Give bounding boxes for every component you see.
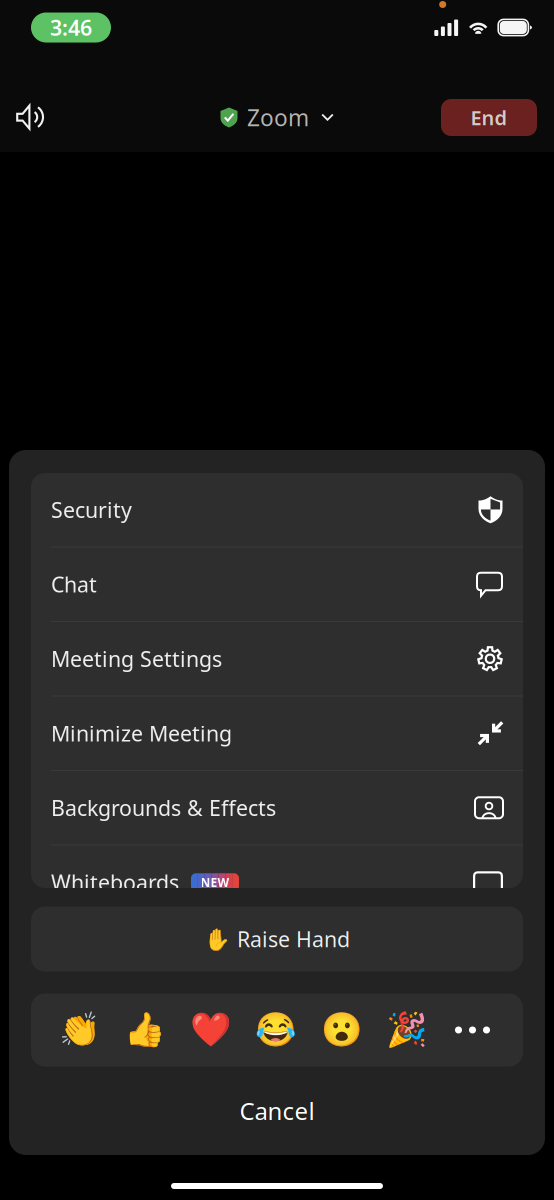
staticText: ✋ Raise Hand — [204, 925, 350, 953]
button[interactable]: Laugh — [243, 993, 309, 1066]
button[interactable]: Clap — [47, 993, 112, 1066]
button[interactable]: More reactions — [440, 993, 505, 1066]
button[interactable]: Wow — [309, 993, 374, 1066]
staticText: Minimize Meeting — [51, 719, 232, 747]
staticText: 😂 — [255, 1011, 297, 1049]
staticText: 🎉 — [386, 1011, 428, 1049]
button[interactable]: Meeting Settings — [31, 622, 523, 695]
staticText: 3:46 — [50, 13, 92, 42]
button[interactable]: Celebrate — [374, 993, 440, 1066]
button[interactable]: Minimize Meeting — [31, 696, 523, 770]
staticText: 👍 — [124, 1011, 166, 1049]
staticText: Backgrounds & Effects — [51, 794, 276, 822]
staticText: ❤️ — [189, 1011, 231, 1049]
button[interactable]: Backgrounds & Effects — [31, 771, 523, 844]
staticText: 😮 — [320, 1011, 362, 1049]
staticText: 👏 — [58, 1011, 100, 1049]
staticText: NEW — [200, 874, 229, 890]
staticText: Cancel — [239, 1095, 314, 1127]
staticText: Meeting Settings — [51, 645, 222, 673]
staticText: Chat — [51, 570, 97, 598]
button[interactable]: Thumbs up — [112, 993, 178, 1066]
staticText: Zoom — [247, 102, 309, 132]
staticText: Security — [51, 496, 132, 524]
button[interactable]: Heart — [178, 993, 243, 1066]
button[interactable]: Whiteboards — [31, 845, 523, 919]
button[interactable]: Speaker — [0, 90, 65, 145]
button[interactable]: Chat — [31, 547, 523, 621]
button[interactable]: ✋ Raise Hand — [31, 906, 523, 971]
button[interactable]: Security — [31, 473, 523, 546]
button[interactable]: End — [441, 99, 537, 136]
staticText: Whiteboards — [51, 868, 179, 896]
button[interactable]: Cancel — [9, 1066, 545, 1155]
staticText: End — [470, 104, 507, 131]
